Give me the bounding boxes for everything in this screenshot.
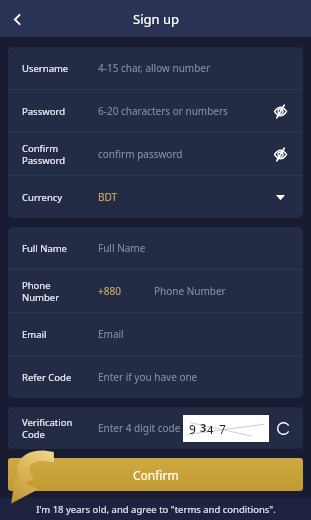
button[interactable]: Enter 4 digit code (98, 421, 183, 435)
button[interactable]: Show password (267, 98, 293, 124)
staticText: Full Name (22, 242, 67, 255)
button[interactable]: Username (8, 47, 303, 89)
staticText: Phone Number (154, 284, 226, 298)
staticText: Full Name (98, 241, 146, 255)
button[interactable]: Select currency (267, 184, 293, 210)
button[interactable]: Refer Code (8, 356, 303, 398)
staticText: I'm 18 years old, and agree to "terms an… (36, 503, 276, 516)
staticText: +880 (98, 284, 154, 298)
button[interactable]: Password (8, 90, 303, 132)
staticText: Phone Number (22, 279, 60, 303)
button[interactable]: I'm 18 years old, and agree to "terms an… (0, 498, 311, 520)
staticText: Email (22, 328, 47, 341)
staticText: Password (22, 105, 65, 118)
button[interactable]: Currency (8, 176, 303, 218)
staticText: 4 (207, 422, 214, 437)
button[interactable]: Refresh captcha (269, 414, 297, 442)
staticText: Refer Code (22, 371, 72, 384)
staticText: 7 (219, 421, 226, 437)
staticText: Confirm Password (22, 142, 65, 166)
button[interactable]: Captcha image (183, 415, 269, 442)
button[interactable]: Phone Number (8, 270, 303, 312)
staticText: Enter if you have one (98, 370, 198, 384)
staticText: BDT (98, 190, 118, 204)
staticText: Currency (22, 191, 63, 204)
button[interactable]: Email (8, 313, 303, 355)
staticText: Email (98, 327, 124, 341)
staticText: 3 (200, 420, 207, 435)
staticText: confirm password (98, 147, 183, 161)
button[interactable]: Confirm Password (8, 133, 303, 175)
staticText: 6-20 characters or numbers (98, 104, 228, 118)
staticText: Enter 4 digit code (98, 421, 181, 435)
staticText: 9 (189, 421, 196, 437)
staticText: 4-15 char, allow number (98, 61, 211, 75)
staticText: Confirm (133, 467, 179, 483)
button[interactable]: Back (0, 2, 34, 36)
staticText: Sign up (133, 10, 179, 28)
staticText: Verification Code (22, 416, 73, 440)
staticText: Username (22, 62, 69, 75)
button[interactable]: Confirm (8, 458, 303, 491)
button[interactable]: Show confirm password (267, 141, 293, 167)
button[interactable]: Full Name (8, 227, 303, 269)
